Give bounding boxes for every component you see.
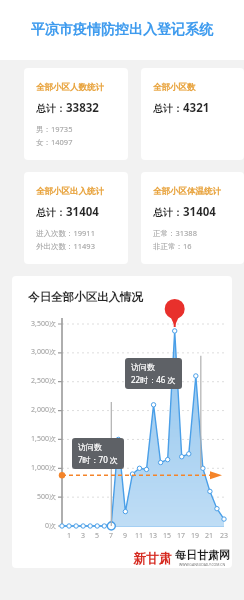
staticText: 19 bbox=[188, 531, 202, 541]
staticText: 全部小区数 bbox=[153, 82, 196, 93]
staticText: 22时：46 次 bbox=[131, 374, 176, 385]
staticText: 进入次数：19911 bbox=[36, 228, 95, 238]
button[interactable]: 全部小区数 bbox=[141, 68, 244, 160]
staticText: 总计： bbox=[36, 102, 66, 115]
staticText: 今日全部小区出入情况 bbox=[28, 290, 143, 304]
staticText: 新甘肃 bbox=[133, 550, 172, 566]
staticText: 平凉市疫情防控出入登记系统 bbox=[31, 21, 213, 39]
staticText: 1 bbox=[62, 531, 76, 541]
staticText: 访问数 bbox=[131, 362, 155, 372]
button[interactable]: 今日全部小区出入情况 bbox=[12, 276, 232, 568]
staticText: 13 bbox=[146, 531, 160, 541]
staticText: 17 bbox=[174, 531, 188, 541]
button[interactable]: 访问数 bbox=[72, 438, 124, 469]
staticText: 1,500次 bbox=[12, 434, 56, 444]
staticText: 3,500次 bbox=[12, 319, 56, 329]
staticText: 23 bbox=[217, 531, 231, 541]
button[interactable]: 全部小区人数统计 bbox=[24, 68, 128, 160]
staticText: 15 bbox=[160, 531, 174, 541]
staticText: 2,000次 bbox=[12, 405, 56, 415]
staticText: 男：19735 bbox=[36, 124, 73, 134]
staticText: 总计： bbox=[153, 102, 183, 115]
staticText: 21 bbox=[202, 531, 216, 541]
staticText: 9 bbox=[118, 531, 132, 541]
staticText: 全部小区出入统计 bbox=[36, 186, 104, 197]
staticText: 女：14097 bbox=[36, 137, 73, 147]
staticText: WWW.GANSUDAILY.COM.CN bbox=[179, 562, 226, 567]
staticText: 访问数 bbox=[78, 442, 102, 452]
staticText: 1,000次 bbox=[12, 463, 56, 473]
staticText: 3 bbox=[76, 531, 90, 541]
staticText: 31404 bbox=[66, 204, 99, 220]
staticText: 3,000次 bbox=[12, 347, 56, 357]
button[interactable]: 全部小区出入统计 bbox=[24, 172, 128, 264]
staticText: 正常：31388 bbox=[153, 228, 197, 238]
staticText: 全部小区体温统计 bbox=[153, 186, 221, 197]
staticText: 总计： bbox=[36, 206, 66, 219]
staticText: 500次 bbox=[12, 492, 56, 502]
button[interactable]: 访问数 bbox=[125, 358, 182, 389]
staticText: 7时：70 次 bbox=[78, 454, 118, 465]
staticText: 33832 bbox=[66, 100, 99, 116]
button[interactable]: 全部小区体温统计 bbox=[141, 172, 244, 264]
staticText: 5 bbox=[90, 531, 104, 541]
staticText: 0次 bbox=[12, 521, 56, 531]
staticText: 总计： bbox=[153, 206, 183, 219]
staticText: 非正常：16 bbox=[153, 241, 192, 251]
staticText: 2,500次 bbox=[12, 376, 56, 386]
staticText: 每日甘肃网 bbox=[175, 548, 230, 562]
staticText: 31404 bbox=[183, 204, 216, 220]
staticText: 7 bbox=[104, 531, 118, 541]
staticText: 外出次数：11493 bbox=[36, 241, 95, 251]
staticText: 4321 bbox=[183, 100, 210, 116]
staticText: 11 bbox=[132, 531, 146, 541]
staticText: 全部小区人数统计 bbox=[36, 82, 104, 93]
